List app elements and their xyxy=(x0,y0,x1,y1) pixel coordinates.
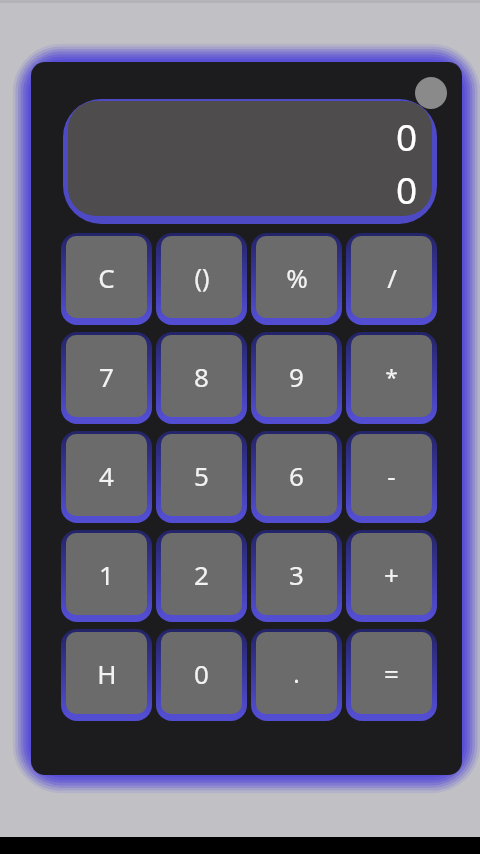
staticText: 7 xyxy=(99,359,114,394)
button[interactable]: Menu xyxy=(415,77,447,109)
staticText: 9 xyxy=(289,359,304,394)
button[interactable]: - xyxy=(351,434,432,516)
button[interactable]: = xyxy=(351,632,432,714)
staticText: 4 xyxy=(99,458,114,493)
button[interactable]: 9 xyxy=(256,335,337,417)
button[interactable]: / xyxy=(351,236,432,318)
staticText: * xyxy=(385,361,398,391)
staticText: () xyxy=(194,260,210,294)
staticText: 0 xyxy=(194,656,209,691)
staticText: 2 xyxy=(194,557,209,592)
staticText: = xyxy=(384,656,399,691)
staticText: 5 xyxy=(194,458,209,493)
button[interactable]: 0 xyxy=(68,101,432,216)
button[interactable]: H xyxy=(66,632,147,714)
staticText: + xyxy=(384,557,399,592)
button[interactable]: C xyxy=(66,236,147,318)
button[interactable]: 0 xyxy=(161,632,242,714)
button[interactable]: 4 xyxy=(66,434,147,516)
staticText: 0 xyxy=(396,111,418,161)
button[interactable]: () xyxy=(161,236,242,318)
staticText: 3 xyxy=(289,557,304,592)
staticText: % xyxy=(286,260,308,295)
staticText: 6 xyxy=(289,458,304,493)
button[interactable]: 1 xyxy=(66,533,147,615)
staticText: C xyxy=(98,260,115,295)
staticText: 1 xyxy=(99,557,114,592)
button[interactable]: * xyxy=(351,335,432,417)
button[interactable]: . xyxy=(256,632,337,714)
button[interactable]: 2 xyxy=(161,533,242,615)
staticText: - xyxy=(387,458,396,493)
button[interactable]: % xyxy=(256,236,337,318)
staticText: H xyxy=(97,656,117,691)
button[interactable]: 3 xyxy=(256,533,337,615)
staticText: 0 xyxy=(396,164,418,214)
button[interactable]: 5 xyxy=(161,434,242,516)
button[interactable]: 7 xyxy=(66,335,147,417)
staticText: 8 xyxy=(194,359,209,394)
staticText: / xyxy=(387,260,397,295)
button[interactable]: + xyxy=(351,533,432,615)
button[interactable]: 8 xyxy=(161,335,242,417)
button[interactable]: 6 xyxy=(256,434,337,516)
staticText: . xyxy=(293,657,300,690)
